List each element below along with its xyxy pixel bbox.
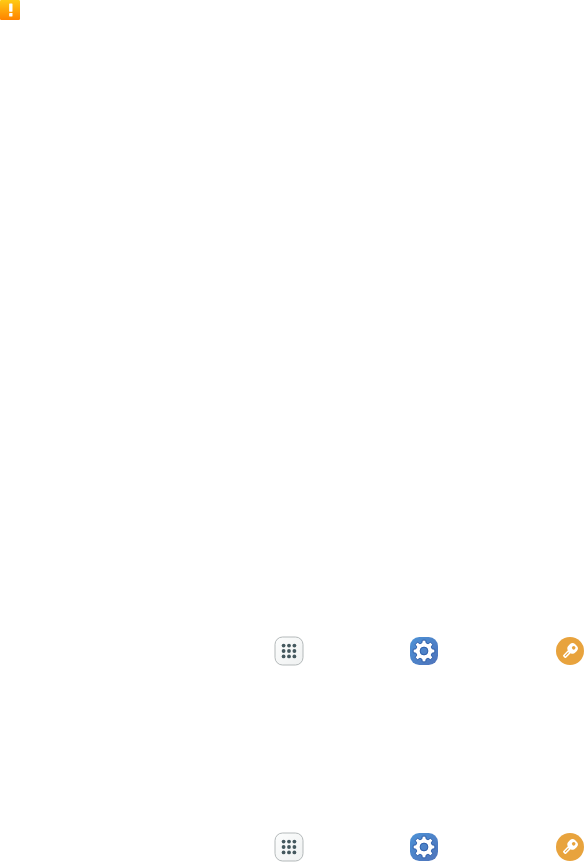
button[interactable]: Settings: [410, 637, 438, 665]
button[interactable]: Apps: [275, 637, 303, 665]
button[interactable]: Warning: [0, 0, 20, 20]
button[interactable]: Apps: [275, 833, 303, 861]
button[interactable]: Key: [556, 833, 584, 861]
button[interactable]: Key: [556, 637, 584, 665]
button[interactable]: Settings: [410, 833, 438, 861]
